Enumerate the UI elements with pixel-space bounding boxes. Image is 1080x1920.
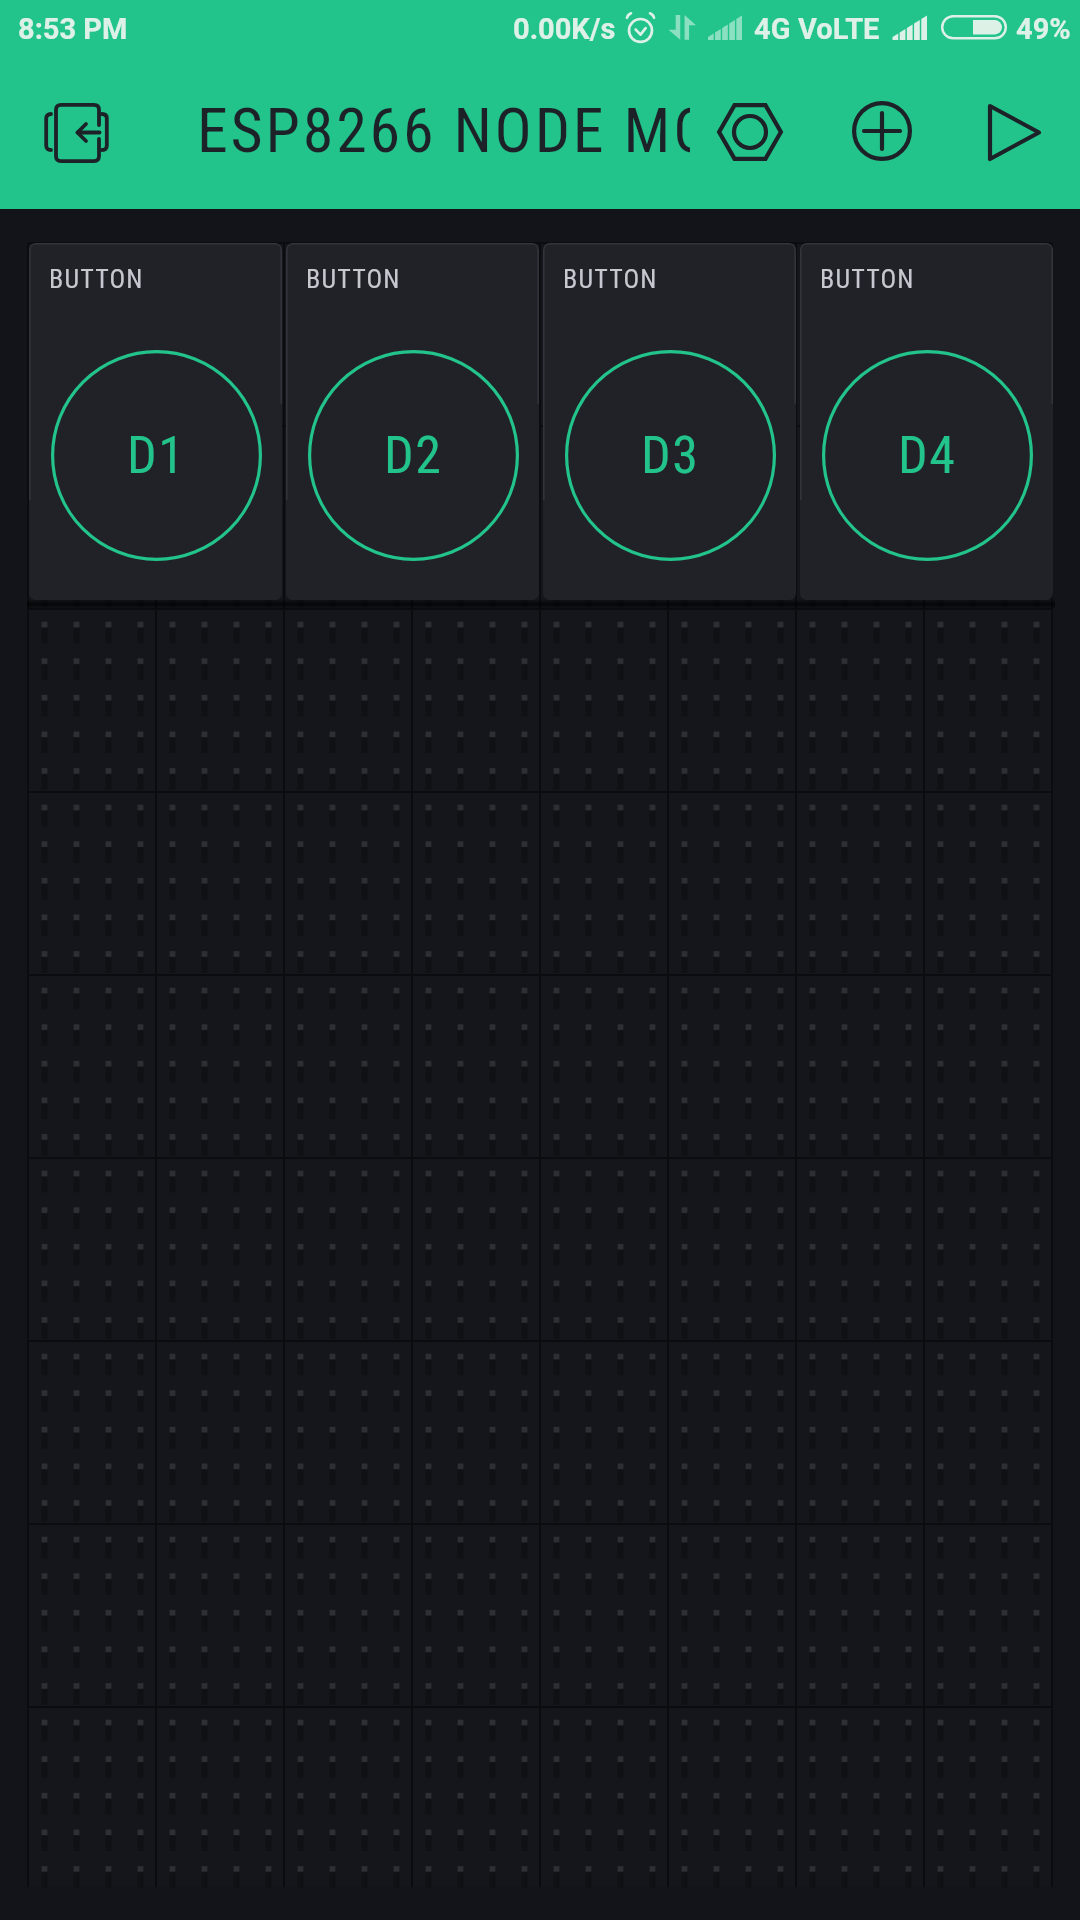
staticText: 0.00K/s [513,12,616,46]
staticText: VoLTE [798,12,880,46]
button[interactable]: Exit project [20,90,130,176]
button[interactable]: BUTTON [800,243,1053,600]
staticText: D4 [898,425,957,486]
staticText: BUTTON [306,264,401,294]
staticText: 8:53 PM [18,12,128,46]
button[interactable]: BUTTON [29,243,282,600]
staticText: D2 [384,425,443,486]
button[interactable]: Add widget [834,89,930,175]
staticText: BUTTON [563,264,658,294]
staticText: ESP8266 NODE MODULE [197,94,690,167]
staticText: 49% [1016,12,1071,46]
staticText: D1 [127,425,186,486]
button[interactable]: Run project [962,89,1062,175]
staticText: D3 [641,425,700,486]
staticText: BUTTON [49,264,144,294]
button[interactable]: BUTTON [543,243,796,600]
staticText: 4G [754,12,791,46]
button[interactable]: BUTTON [286,243,539,600]
staticText: BUTTON [820,264,915,294]
button[interactable]: Settings [700,89,800,175]
